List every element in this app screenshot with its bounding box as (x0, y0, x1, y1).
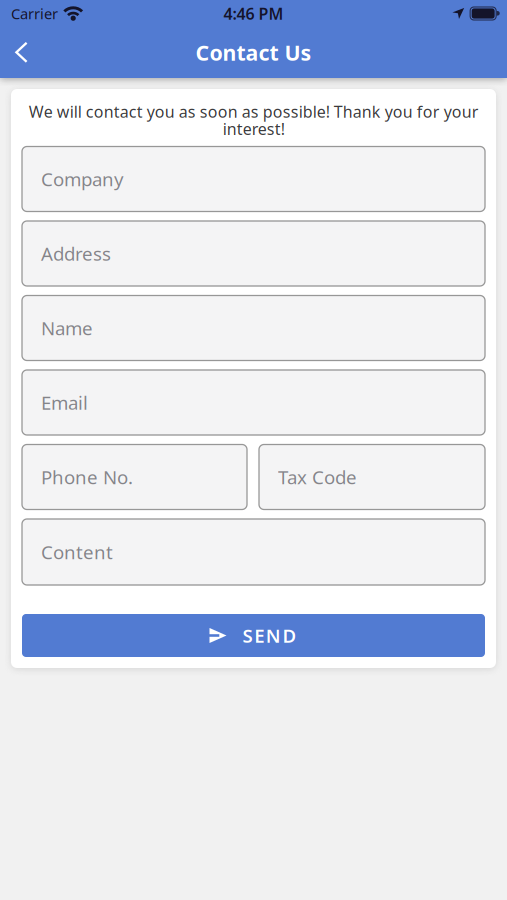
staticText: Carrier (11, 4, 58, 23)
staticText: Name (41, 316, 93, 340)
button[interactable]: Phone No. (22, 444, 247, 509)
staticText: Phone No. (41, 465, 133, 489)
staticText: Address (41, 241, 111, 266)
button[interactable]: Name (22, 295, 485, 360)
button[interactable]: Tax Code (259, 444, 485, 509)
staticText: Company (41, 167, 124, 191)
button[interactable]: Content (22, 519, 485, 585)
staticText: We will contact you as soon as possible!… (28, 101, 478, 139)
button[interactable]: SEND (22, 614, 485, 657)
staticText: Contact Us (195, 38, 311, 67)
staticText: Tax Code (278, 465, 357, 489)
button[interactable]: Company (22, 146, 485, 211)
staticText: SEND (243, 623, 296, 648)
staticText: Content (41, 540, 113, 564)
button[interactable]: Email (22, 370, 485, 435)
staticText: 4:46 PM (223, 3, 283, 24)
button[interactable]: Address (22, 221, 485, 286)
button[interactable]: Back (0, 30, 43, 74)
staticText: Email (41, 390, 88, 415)
